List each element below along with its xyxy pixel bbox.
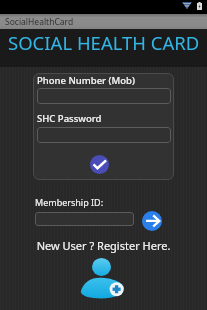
staticText: Membership ID: [35,196,104,208]
staticText: SOCIAL HEALTH CARD [8,30,200,55]
button[interactable] [35,212,134,226]
staticText: SocialHealthCard [5,16,74,28]
staticText: SHC Password [37,112,102,125]
button[interactable]: Search membership id [142,211,162,231]
button[interactable] [37,88,171,104]
staticText: Phone Number (Mob) [37,74,135,87]
button[interactable] [37,127,171,143]
button[interactable]: Register new user [78,256,124,302]
button[interactable]: Sign in [90,155,109,174]
button[interactable]: New User ? Register Here. [0,238,207,253]
